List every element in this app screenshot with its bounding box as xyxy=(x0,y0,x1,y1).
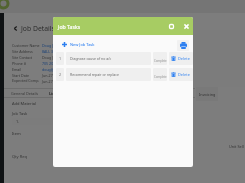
staticText: Complete xyxy=(154,59,167,63)
staticText: Job Details J0004 xyxy=(21,24,74,33)
staticText: General Details xyxy=(11,91,39,96)
button[interactable]: Delete xyxy=(169,52,193,65)
staticText: Start Date xyxy=(12,73,42,78)
staticText: Expected Comp. Date xyxy=(12,78,42,84)
staticText: Site Address xyxy=(12,49,42,54)
staticText: 2 xyxy=(59,72,62,77)
staticText: Qty Req xyxy=(12,154,27,159)
staticText: Delete xyxy=(178,56,190,61)
button[interactable]: Line Items xyxy=(46,90,72,97)
button[interactable]: Delete xyxy=(169,68,193,81)
button[interactable]: New Job Task xyxy=(62,40,95,48)
staticText: 8ALL 37 xyxy=(42,49,56,54)
button[interactable]: Job Details J0004 xyxy=(4,21,195,35)
staticText: Doug Je xyxy=(42,43,56,48)
staticText: Customer Name xyxy=(12,43,42,48)
staticText: Email xyxy=(12,67,42,72)
staticText: 705 208 xyxy=(42,61,56,66)
button[interactable]: General Details xyxy=(4,90,46,97)
button[interactable]: 1. xyxy=(12,118,56,125)
staticText: Complete xyxy=(154,75,167,79)
button[interactable]: Print xyxy=(177,40,189,51)
staticText: Phone # xyxy=(12,61,42,66)
staticText: Invoicing xyxy=(199,92,216,97)
staticText: Line Items xyxy=(49,91,69,96)
staticText: Diagnose cause of no a/c xyxy=(70,56,112,61)
button[interactable]: Complete xyxy=(153,68,167,81)
staticText: New Job Task xyxy=(70,42,95,47)
staticText: Jun-27, 4 xyxy=(42,79,57,84)
staticText: Delete xyxy=(178,72,190,77)
staticText: Add Material xyxy=(12,101,37,106)
staticText: Site Contact xyxy=(12,55,42,60)
staticText: 1. xyxy=(16,119,20,124)
button[interactable]: Maximize xyxy=(166,21,177,32)
button[interactable]: Close xyxy=(181,21,192,32)
button[interactable]: Diagnose cause of no a/c xyxy=(66,52,151,65)
staticText: Jun-27, 4 xyxy=(42,73,57,78)
button[interactable]: Invoicing xyxy=(196,87,218,101)
button[interactable]: Recommend repair or replace xyxy=(66,68,151,81)
staticText: Item xyxy=(12,131,21,136)
staticText: Doug Je xyxy=(42,55,56,60)
staticText: 1 xyxy=(59,56,62,61)
staticText: Recommend repair or replace xyxy=(70,72,119,77)
staticText: doug@a xyxy=(42,67,57,72)
staticText: Job Task xyxy=(12,111,28,116)
staticText: Job Tasks xyxy=(58,23,81,30)
staticText: Unit Sell xyxy=(229,144,244,149)
button[interactable]: Complete xyxy=(153,52,167,65)
